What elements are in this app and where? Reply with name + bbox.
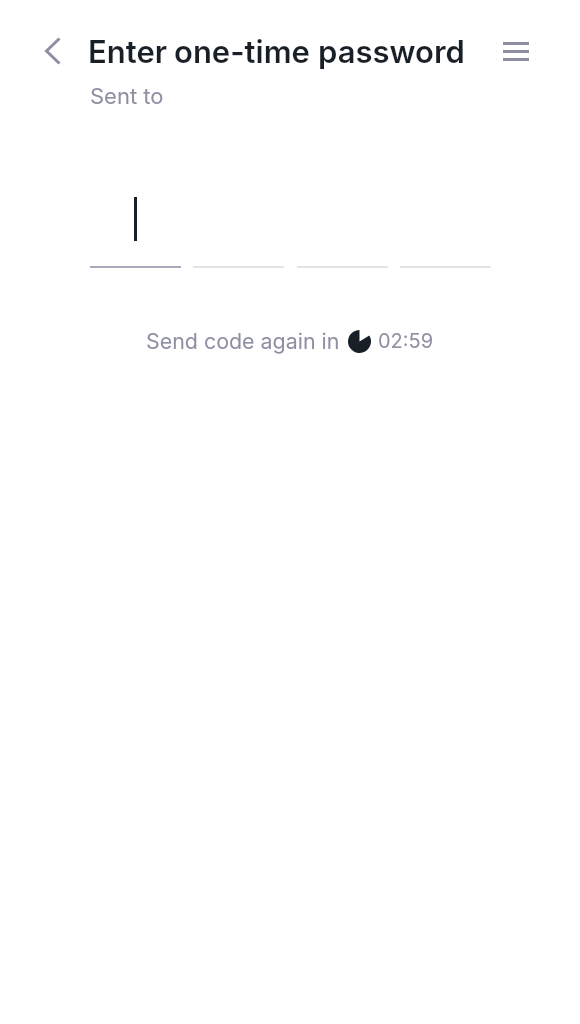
staticText: 02:59 (378, 329, 434, 353)
button[interactable] (90, 180, 181, 268)
staticText: one-time (174, 33, 310, 71)
staticText: Enter (88, 33, 168, 71)
staticText: Send code again in (146, 328, 340, 354)
staticText: password (318, 33, 465, 71)
button[interactable] (297, 180, 388, 268)
staticText: Sent to (90, 83, 164, 110)
button[interactable]: Back (30, 28, 76, 74)
button[interactable] (400, 180, 491, 268)
button[interactable] (193, 180, 284, 268)
button[interactable]: Menu (488, 23, 544, 79)
